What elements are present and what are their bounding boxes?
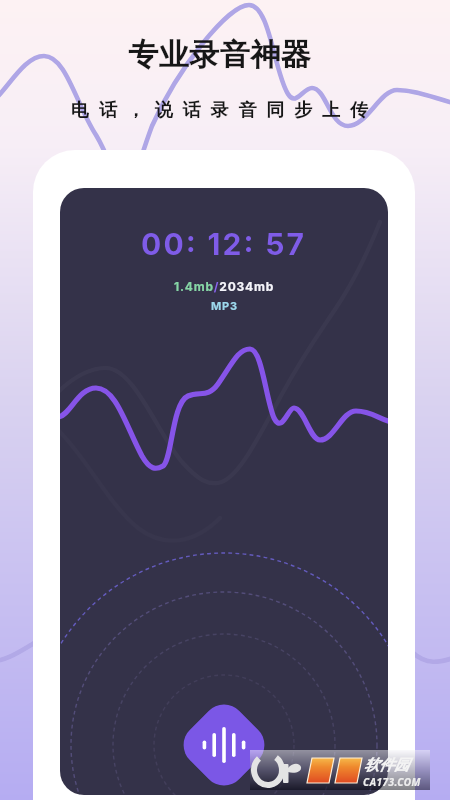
staticText: 专业录音神器 [128,36,311,74]
staticText: 1.4mb/2034mb [174,279,275,294]
staticText: MP3 [211,299,238,312]
staticText: 软件园 [364,756,409,775]
staticText: 00: 12: 57 [141,226,307,262]
button[interactable]: Record [174,695,273,794]
staticText: CA173.COM [363,775,421,789]
staticText: 电话，说话录音同步上传 [71,99,378,122]
